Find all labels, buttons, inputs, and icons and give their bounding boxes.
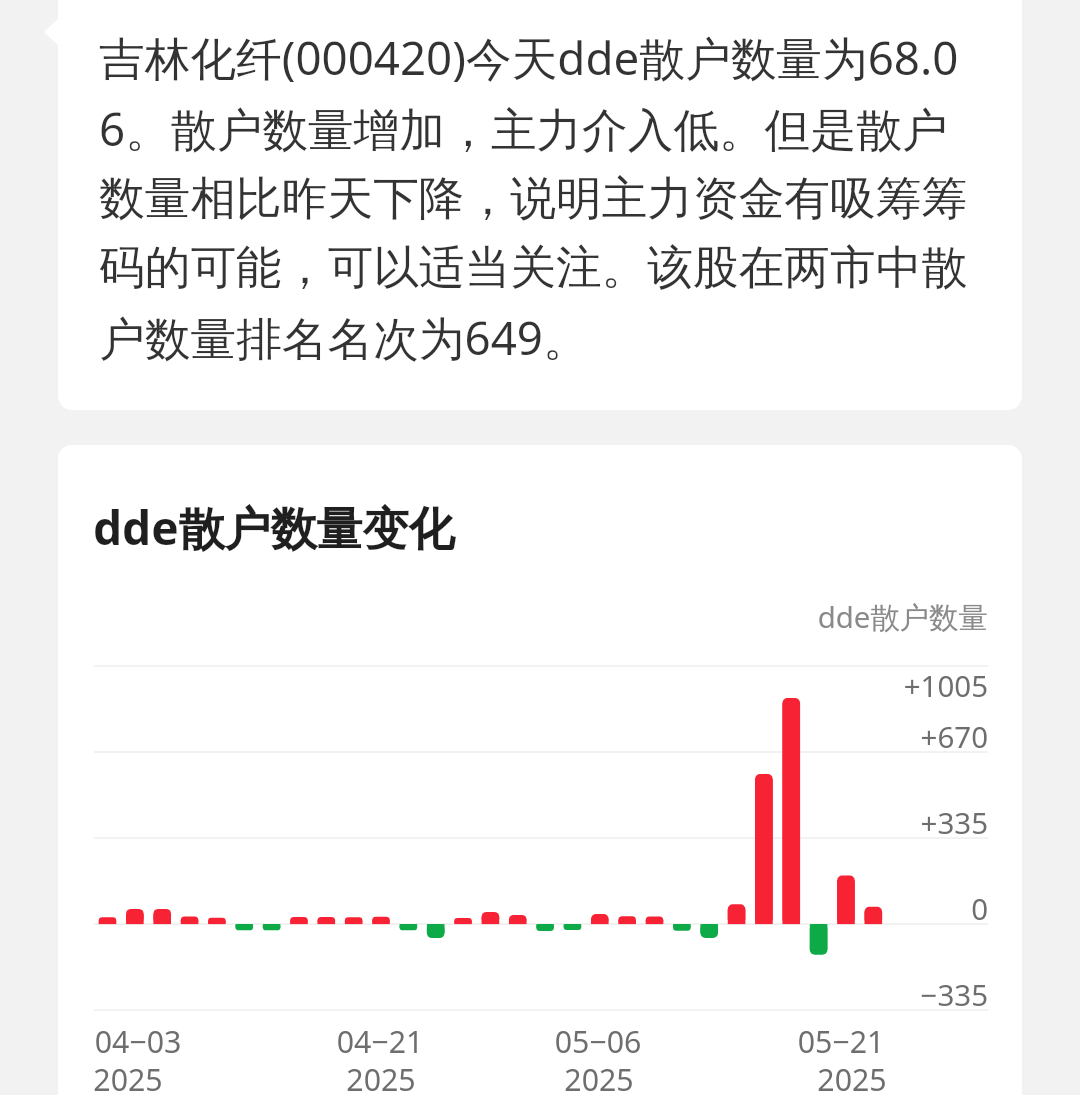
staticText: dde散户数量变化 <box>93 496 455 559</box>
staticText: +1005 <box>688 665 988 705</box>
staticText: +670 <box>688 716 988 756</box>
staticText: −335 <box>688 974 988 1014</box>
button[interactable]: dde散户数量变化 <box>58 445 1022 1095</box>
staticText: 2025 <box>509 1059 689 1095</box>
staticText: 2025 <box>762 1059 942 1095</box>
staticText: 04−21 <box>290 1021 470 1062</box>
staticText: 04−03 <box>58 1021 228 1062</box>
staticText: 2025 <box>291 1059 471 1095</box>
other: Message bubble pointer <box>44 18 59 46</box>
staticText: 05−06 <box>508 1021 688 1062</box>
staticText: 吉林化纤(000420)今天dde散户数量为68.0 6。散户数量增加，主力介入… <box>99 26 999 368</box>
button[interactable]: 吉林化纤(000420)今天dde散户数量为68.0 6。散户数量增加，主力介入… <box>58 0 1022 410</box>
staticText: 2025 <box>58 1059 218 1095</box>
staticText: +335 <box>688 802 988 842</box>
staticText: 0 <box>688 888 988 928</box>
staticText: 05−21 <box>751 1021 931 1062</box>
staticText: dde散户数量 <box>488 597 988 637</box>
